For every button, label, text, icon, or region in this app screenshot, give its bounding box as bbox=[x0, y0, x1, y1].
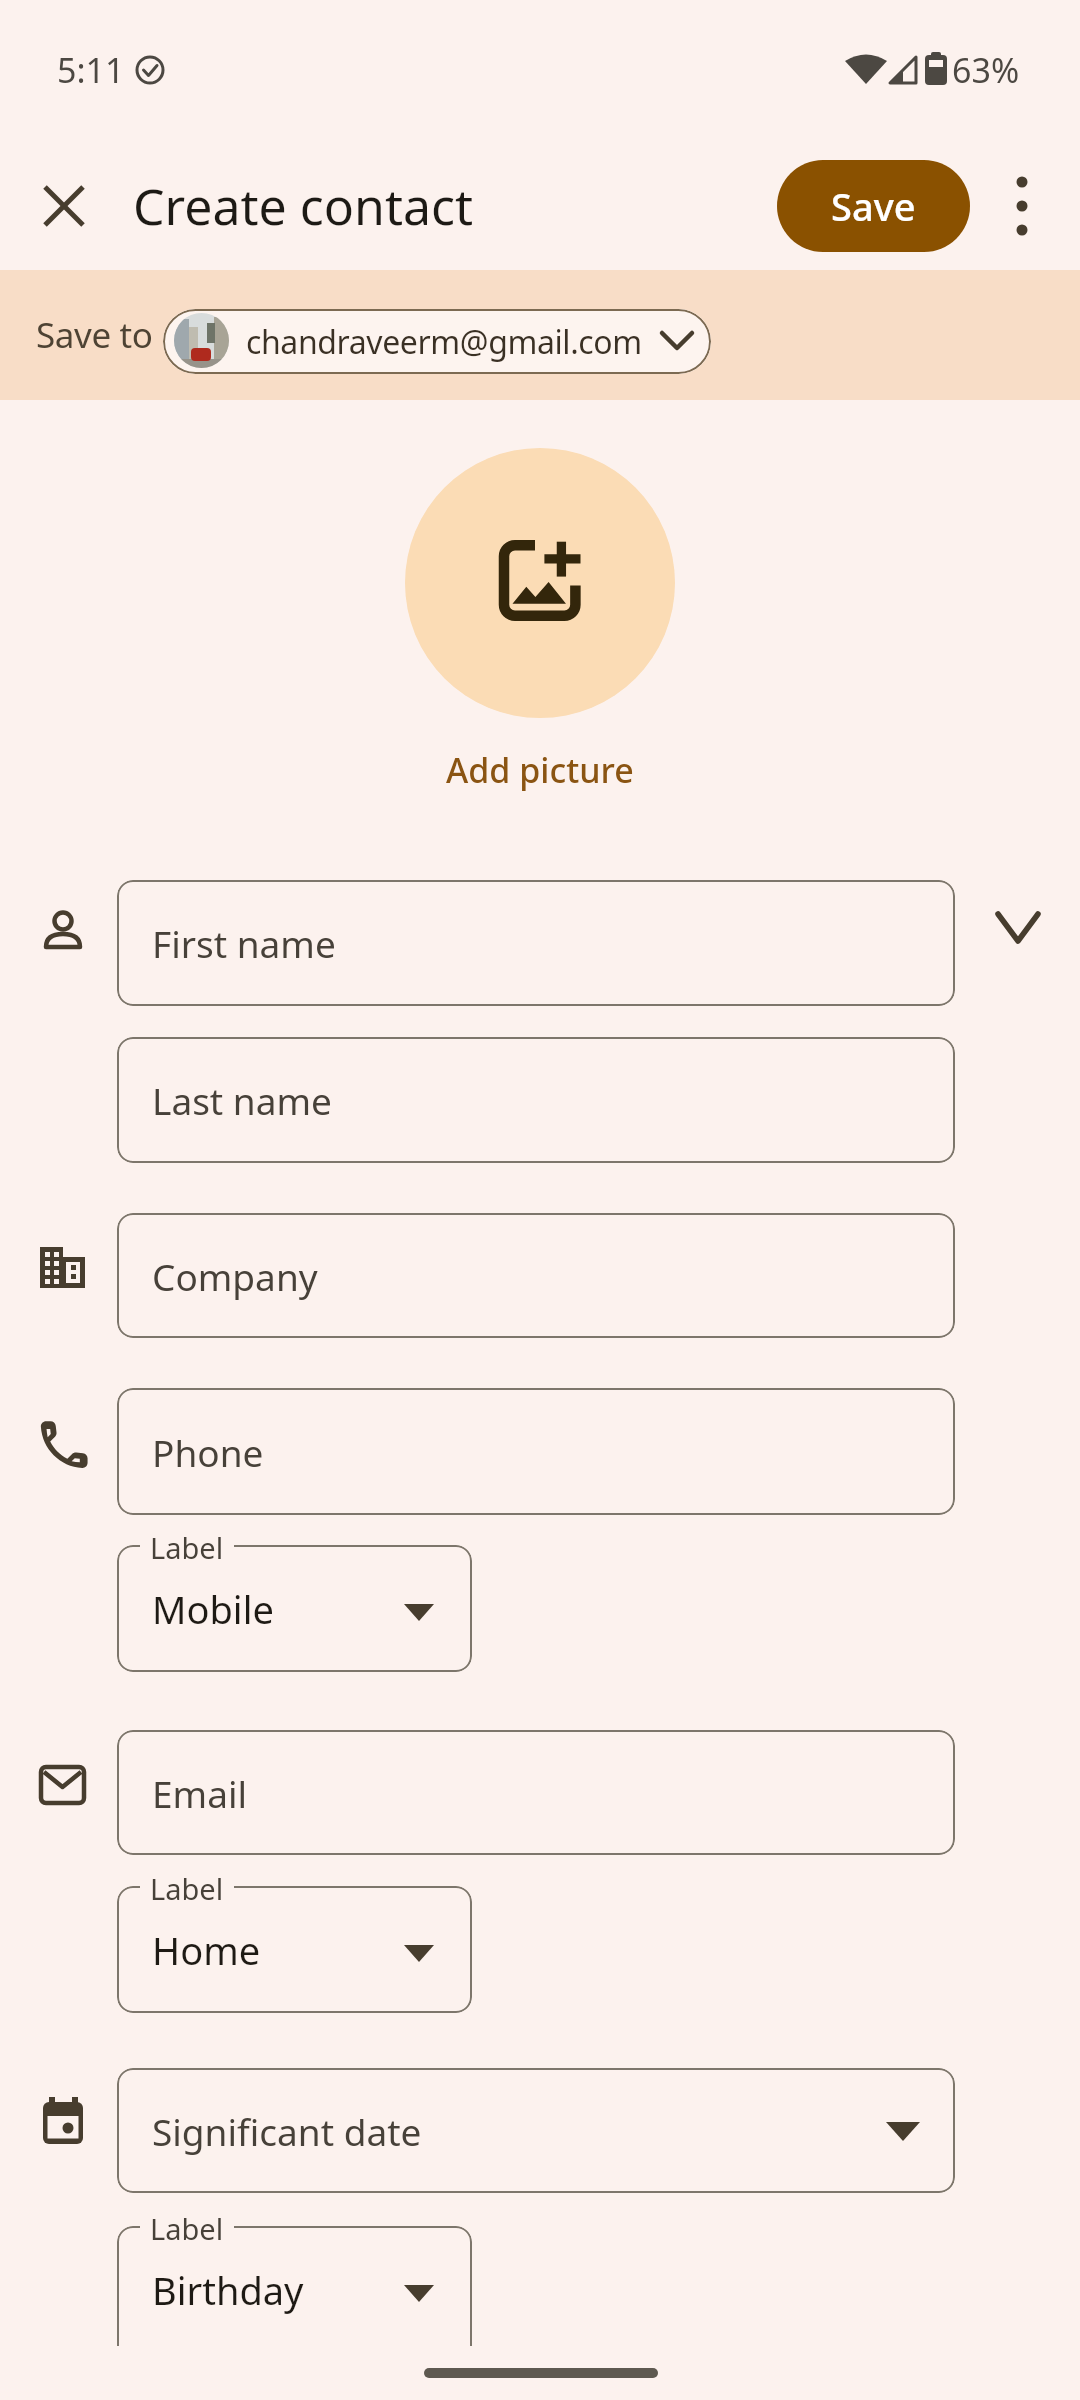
button[interactable]: Email bbox=[117, 1730, 955, 1855]
staticText: Birthday bbox=[152, 2264, 304, 2316]
button[interactable]: Add picture bbox=[340, 735, 740, 805]
button[interactable]: Company bbox=[117, 1213, 955, 1338]
staticText: Home bbox=[152, 1924, 261, 1976]
staticText: Email bbox=[152, 1768, 248, 1818]
staticText: Last name bbox=[152, 1075, 332, 1125]
button[interactable]: Mobile bbox=[117, 1545, 472, 1672]
staticText: Significant date bbox=[152, 2106, 422, 2156]
button[interactable]: Significant date bbox=[117, 2068, 955, 2193]
staticText: Label bbox=[150, 2209, 224, 2245]
button[interactable] bbox=[405, 448, 675, 718]
staticText: First name bbox=[152, 918, 336, 968]
staticText: chandraveerm@gmail.com bbox=[246, 320, 642, 364]
button[interactable]: Home bbox=[117, 1886, 472, 2013]
staticText: Mobile bbox=[152, 1583, 274, 1635]
button[interactable]: Last name bbox=[117, 1037, 955, 1163]
button[interactable]: First name bbox=[117, 880, 955, 1006]
staticText: Save bbox=[831, 180, 916, 232]
staticText: Label bbox=[150, 1528, 224, 1564]
staticText: 63% bbox=[952, 47, 1020, 93]
button[interactable] bbox=[988, 898, 1048, 958]
staticText: Label bbox=[150, 1869, 224, 1905]
button[interactable]: Phone bbox=[117, 1388, 955, 1515]
button[interactable] bbox=[34, 176, 94, 236]
button[interactable]: Save bbox=[777, 160, 970, 252]
button[interactable]: Birthday bbox=[117, 2226, 472, 2353]
staticText: 5:11 bbox=[57, 47, 125, 93]
staticText: Save to bbox=[36, 311, 153, 359]
staticText: Add picture bbox=[446, 747, 634, 793]
button[interactable] bbox=[992, 176, 1052, 236]
button[interactable] bbox=[163, 309, 711, 374]
staticText: Create contact bbox=[133, 172, 474, 240]
staticText: Company bbox=[152, 1251, 318, 1301]
staticText: Phone bbox=[152, 1427, 264, 1477]
